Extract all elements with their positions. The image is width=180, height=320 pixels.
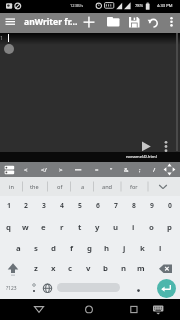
button[interactable]: and	[96, 180, 118, 194]
button[interactable]: c	[62, 259, 79, 278]
staticText: g	[87, 243, 92, 254]
staticText: 9	[150, 201, 154, 210]
button[interactable]	[106, 16, 121, 29]
button[interactable]	[57, 283, 120, 292]
button[interactable]: h	[98, 238, 115, 258]
button[interactable]: d	[45, 238, 62, 258]
staticText: 3	[42, 201, 46, 210]
button[interactable]	[126, 302, 142, 317]
button[interactable]: 8	[125, 195, 142, 215]
button[interactable]	[160, 137, 172, 154]
button[interactable]: in	[0, 180, 22, 194]
staticText: u	[113, 222, 119, 233]
staticText: for	[130, 183, 138, 191]
button[interactable]: q	[0, 217, 17, 237]
button[interactable]: m	[132, 259, 149, 278]
button[interactable]	[147, 16, 160, 29]
button[interactable]: e	[35, 217, 52, 237]
button[interactable]: r	[53, 217, 70, 237]
button[interactable]	[138, 137, 155, 153]
button[interactable]: z	[27, 259, 44, 278]
button[interactable]: t	[71, 217, 88, 237]
button[interactable]: <	[19, 163, 33, 177]
staticText: z	[34, 263, 38, 274]
button[interactable]: i	[125, 217, 142, 237]
staticText: f	[70, 243, 74, 254]
button[interactable]: j	[116, 238, 133, 258]
staticText: s	[34, 243, 38, 254]
button[interactable]: p	[161, 217, 178, 237]
button[interactable]: l	[152, 238, 169, 258]
button[interactable]: y	[89, 217, 106, 237]
button[interactable]: the	[23, 180, 45, 194]
staticText: </	[41, 166, 47, 174]
button[interactable]	[82, 15, 96, 29]
button[interactable]: b	[97, 259, 114, 278]
button[interactable]: k	[134, 238, 151, 258]
button[interactable]	[26, 279, 41, 298]
button[interactable]: a	[72, 180, 94, 194]
button[interactable]	[128, 16, 141, 29]
button[interactable]	[157, 279, 176, 298]
button[interactable]: for	[123, 180, 145, 194]
button[interactable]: n	[115, 259, 132, 278]
button[interactable]: a	[10, 238, 27, 258]
button[interactable]	[3, 164, 17, 176]
staticText: 4:33 PM	[157, 3, 173, 9]
button[interactable]: >	[54, 163, 68, 177]
button[interactable]: x	[45, 259, 62, 278]
button[interactable]: =	[90, 163, 104, 177]
button[interactable]: 5	[71, 195, 88, 215]
button[interactable]	[3, 259, 23, 278]
button[interactable]: 7	[107, 195, 124, 215]
staticText: in	[9, 183, 14, 191]
button[interactable]: /	[147, 163, 161, 177]
button[interactable]	[132, 281, 145, 297]
button[interactable]: 6	[89, 195, 106, 215]
button[interactable]	[72, 164, 84, 175]
button[interactable]: </	[37, 163, 51, 177]
button[interactable]	[81, 302, 97, 317]
button[interactable]: 1	[0, 195, 17, 215]
staticText: anWriter fr...	[24, 16, 78, 28]
staticText: l	[159, 243, 162, 254]
button[interactable]: s	[27, 238, 44, 258]
button[interactable]	[155, 259, 177, 278]
button[interactable]: u	[107, 217, 124, 237]
button[interactable]	[40, 280, 55, 297]
button[interactable]: g	[81, 238, 98, 258]
button[interactable]	[166, 15, 177, 29]
staticText: k	[140, 243, 145, 254]
staticText: /	[153, 166, 156, 174]
button[interactable]	[3, 15, 19, 29]
staticText: e	[41, 222, 46, 233]
staticText: q	[6, 222, 11, 233]
button[interactable]: ?123	[1, 278, 21, 298]
button[interactable]	[4, 44, 14, 54]
button[interactable]: ;	[133, 163, 147, 177]
staticText: w	[22, 222, 29, 233]
staticText: of	[57, 183, 63, 191]
staticText: 7	[114, 201, 118, 210]
button[interactable]	[150, 302, 167, 318]
button[interactable]: w	[17, 217, 34, 237]
button[interactable]: o	[143, 217, 160, 237]
button[interactable]: 4	[53, 195, 70, 215]
button[interactable]: 3	[35, 195, 52, 215]
button[interactable]: 0	[161, 195, 178, 215]
button[interactable]	[31, 302, 47, 317]
button[interactable]: v	[80, 259, 97, 278]
button[interactable]: "	[104, 163, 118, 177]
staticText: noname(4).html	[126, 154, 157, 160]
staticText: <	[24, 166, 28, 174]
staticText: j	[123, 243, 126, 254]
button[interactable]	[163, 163, 176, 176]
button[interactable]	[155, 180, 171, 193]
button[interactable]: 9	[143, 195, 160, 215]
button[interactable]: 2	[17, 195, 34, 215]
staticText: h	[104, 243, 110, 254]
button[interactable]: f	[63, 238, 80, 258]
button[interactable]: of	[49, 180, 71, 194]
button[interactable]: &	[119, 163, 133, 177]
staticText: b	[103, 263, 108, 274]
